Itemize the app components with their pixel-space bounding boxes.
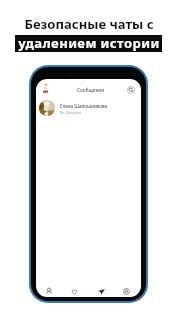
button[interactable]: Favorites bbox=[61, 282, 87, 297]
staticText: Сообщения bbox=[77, 87, 105, 93]
button[interactable]: Елена Шапошникова bbox=[36, 99, 141, 118]
staticText: удалением истории bbox=[18, 34, 160, 51]
button[interactable]: Account bbox=[113, 282, 139, 297]
button[interactable]: Send bbox=[88, 282, 114, 297]
staticText: Елена Шапошникова bbox=[60, 103, 108, 109]
staticText: Вы: Документ bbox=[60, 111, 82, 115]
staticText: Безопасные чаты с bbox=[24, 15, 154, 33]
button[interactable]: Profile bbox=[41, 84, 50, 93]
button[interactable]: People bbox=[36, 282, 62, 297]
button[interactable]: Search bbox=[127, 86, 135, 94]
